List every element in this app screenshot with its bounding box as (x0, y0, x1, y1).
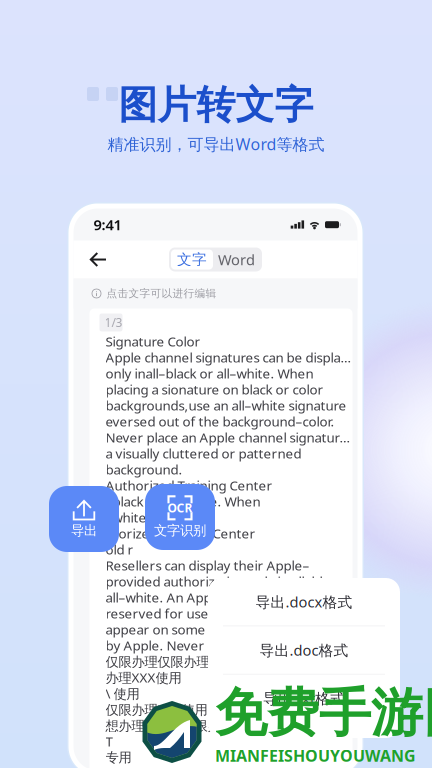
staticText: OCR (167, 500, 192, 516)
staticText: a visually cluttered or patterned (105, 445, 301, 462)
staticText: Never place an Apple channel signature o… (105, 429, 352, 446)
staticText: –black or all–white. When (105, 493, 260, 510)
staticText: 办理XXX使用 (105, 669, 181, 686)
staticText: 导出.docx格式 (255, 592, 352, 611)
staticText: provided authorization only in all–black… (105, 573, 352, 590)
staticText: Signature Color (105, 333, 200, 350)
staticText: MIANFEISHOUYOUWANG (215, 745, 416, 766)
button[interactable]: 导出.docx格式 (208, 578, 400, 625)
staticText: 仅限办理仅限办理XX (105, 653, 225, 670)
staticText: by Apple. Never disp (105, 637, 232, 654)
staticText: 文字 (177, 250, 207, 268)
staticText: all–white. An Apple l (105, 589, 228, 606)
button[interactable]: Back (81, 244, 115, 274)
staticText: 专用 (105, 749, 131, 766)
button[interactable]: 导出.doc格式 (208, 626, 400, 674)
staticText: background. (105, 461, 182, 478)
staticText: Apple channel signatures can be displaye… (105, 349, 352, 366)
button[interactable]: Word (213, 249, 260, 269)
staticText: Word (218, 250, 255, 269)
staticText: 9:41 (93, 215, 121, 234)
staticText: \ 使用 (105, 685, 139, 702)
staticText: –white signature (105, 509, 207, 526)
staticText: T (105, 733, 112, 750)
button[interactable]: 文字 (171, 249, 213, 269)
staticText: 导出.txt格式 (263, 689, 345, 708)
button[interactable]: OCR (145, 484, 215, 550)
staticText: appear on some cha (105, 621, 229, 638)
button[interactable]: 导出.txt格式 (208, 675, 400, 722)
staticText: 文字识别 (154, 522, 206, 539)
staticText: 图片转文字 (118, 81, 313, 129)
staticText: 1/3 (104, 314, 122, 330)
staticText: Authorized Training Center (105, 477, 272, 494)
staticText: thorized Training Center (105, 525, 255, 542)
staticText: backgrounds,use an all–white signature (105, 397, 346, 414)
staticText: 免费手游网 (215, 681, 432, 745)
staticText: 精准识别，可导出Word等格式 (107, 133, 324, 155)
button[interactable]: 导出 (49, 486, 119, 552)
staticText: placing a sionature on black or color (105, 381, 323, 398)
staticText: 点击文字可以进行编辑 (106, 287, 216, 300)
staticText: reserved for use. by (105, 605, 230, 622)
staticText: only inall–black or all–white. When (105, 365, 313, 382)
staticText: eversed out of the background–color. (105, 413, 334, 430)
staticText: 仅限办理XXX使用 仅 (105, 701, 224, 718)
staticText: 导出.doc格式 (259, 640, 348, 660)
staticText: 导出 (71, 522, 97, 539)
staticText: 想办理XXX使用限办 (105, 717, 220, 734)
staticText: old r (105, 541, 133, 558)
staticText: Resellers can display their Apple– (105, 557, 309, 574)
